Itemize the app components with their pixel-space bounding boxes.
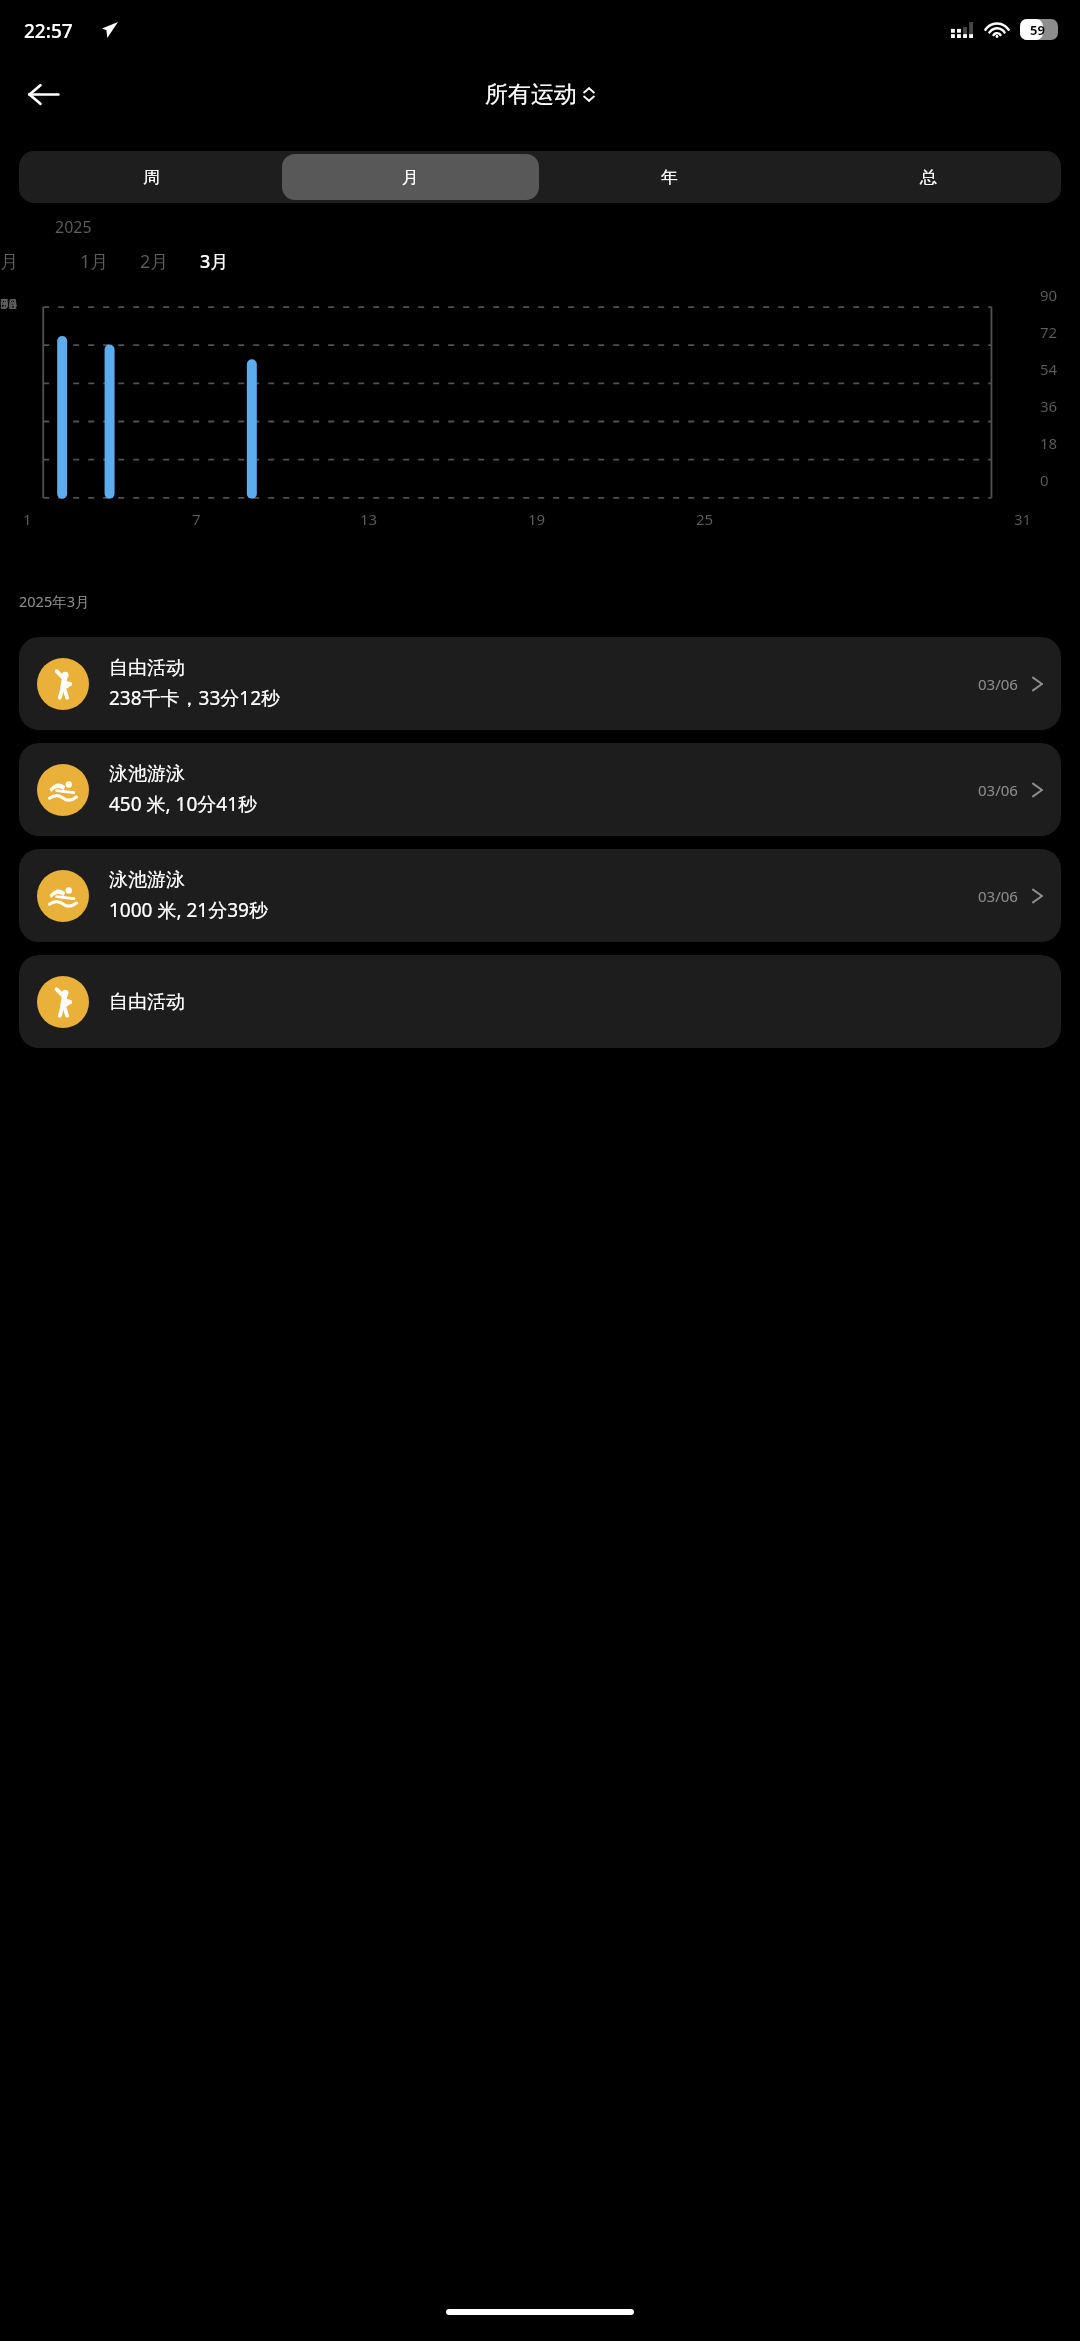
staticText: 自由活动 [109, 990, 185, 1014]
staticText: 周 [143, 167, 160, 188]
staticText: 2025年3月 [19, 591, 90, 611]
staticText: 03/06 [978, 886, 1018, 906]
staticText: 月 [402, 167, 419, 188]
button[interactable]: 泳池游泳 [19, 743, 1061, 836]
staticText: 0 [1040, 470, 1049, 490]
staticText: 54 [0, 293, 18, 313]
staticText: 59 [1030, 21, 1045, 39]
button[interactable]: 1月 [80, 249, 109, 274]
button[interactable]: 泳池游泳 [19, 849, 1061, 942]
staticText: 90 [0, 293, 18, 313]
staticText: 2025 [55, 216, 92, 238]
button[interactable]: Back [14, 65, 72, 123]
staticText: 泳池游泳 [109, 868, 185, 892]
staticText: 54 [1040, 359, 1058, 379]
staticText: 03/06 [978, 780, 1018, 800]
staticText: 19 [528, 509, 546, 529]
staticText: 年 [661, 167, 678, 188]
staticText: 238千卡，33分12秒 [109, 685, 281, 711]
button[interactable]: 所有运动 [485, 80, 596, 109]
staticText: 0 [0, 293, 9, 313]
staticText: 所有运动 [485, 80, 577, 109]
staticText: 1000 米, 21分39秒 [109, 897, 268, 923]
staticText: 03/06 [978, 674, 1018, 694]
staticText: 总 [920, 167, 937, 188]
button[interactable]: 年 [541, 154, 798, 200]
staticText: 1 [23, 509, 32, 529]
staticText: 13 [360, 509, 378, 529]
staticText: 36 [0, 293, 18, 313]
staticText: 7 [192, 509, 201, 529]
button[interactable]: 3月 [200, 249, 229, 274]
button[interactable]: 2月 [140, 249, 169, 274]
staticText: 18 [1040, 433, 1058, 453]
staticText: 25 [696, 509, 714, 529]
staticText: 72 [1040, 322, 1058, 342]
staticText: 450 米, 10分41秒 [109, 791, 258, 817]
staticText: 22:57 [24, 18, 73, 44]
staticText: 31 [1014, 509, 1032, 529]
button[interactable]: 总 [800, 154, 1057, 200]
button[interactable]: 周 [23, 154, 280, 200]
staticText: 18 [0, 293, 18, 313]
staticText: 90 [1040, 285, 1058, 305]
staticText: 泳池游泳 [109, 762, 185, 786]
staticText: 72 [0, 293, 18, 313]
button[interactable]: 2月 [0, 249, 19, 274]
button[interactable]: 月 [282, 154, 539, 200]
button[interactable]: 自由活动 [19, 637, 1061, 730]
staticText: 自由活动 [109, 656, 185, 680]
staticText: 36 [1040, 396, 1058, 416]
button[interactable]: 自由活动 [19, 955, 1061, 1048]
